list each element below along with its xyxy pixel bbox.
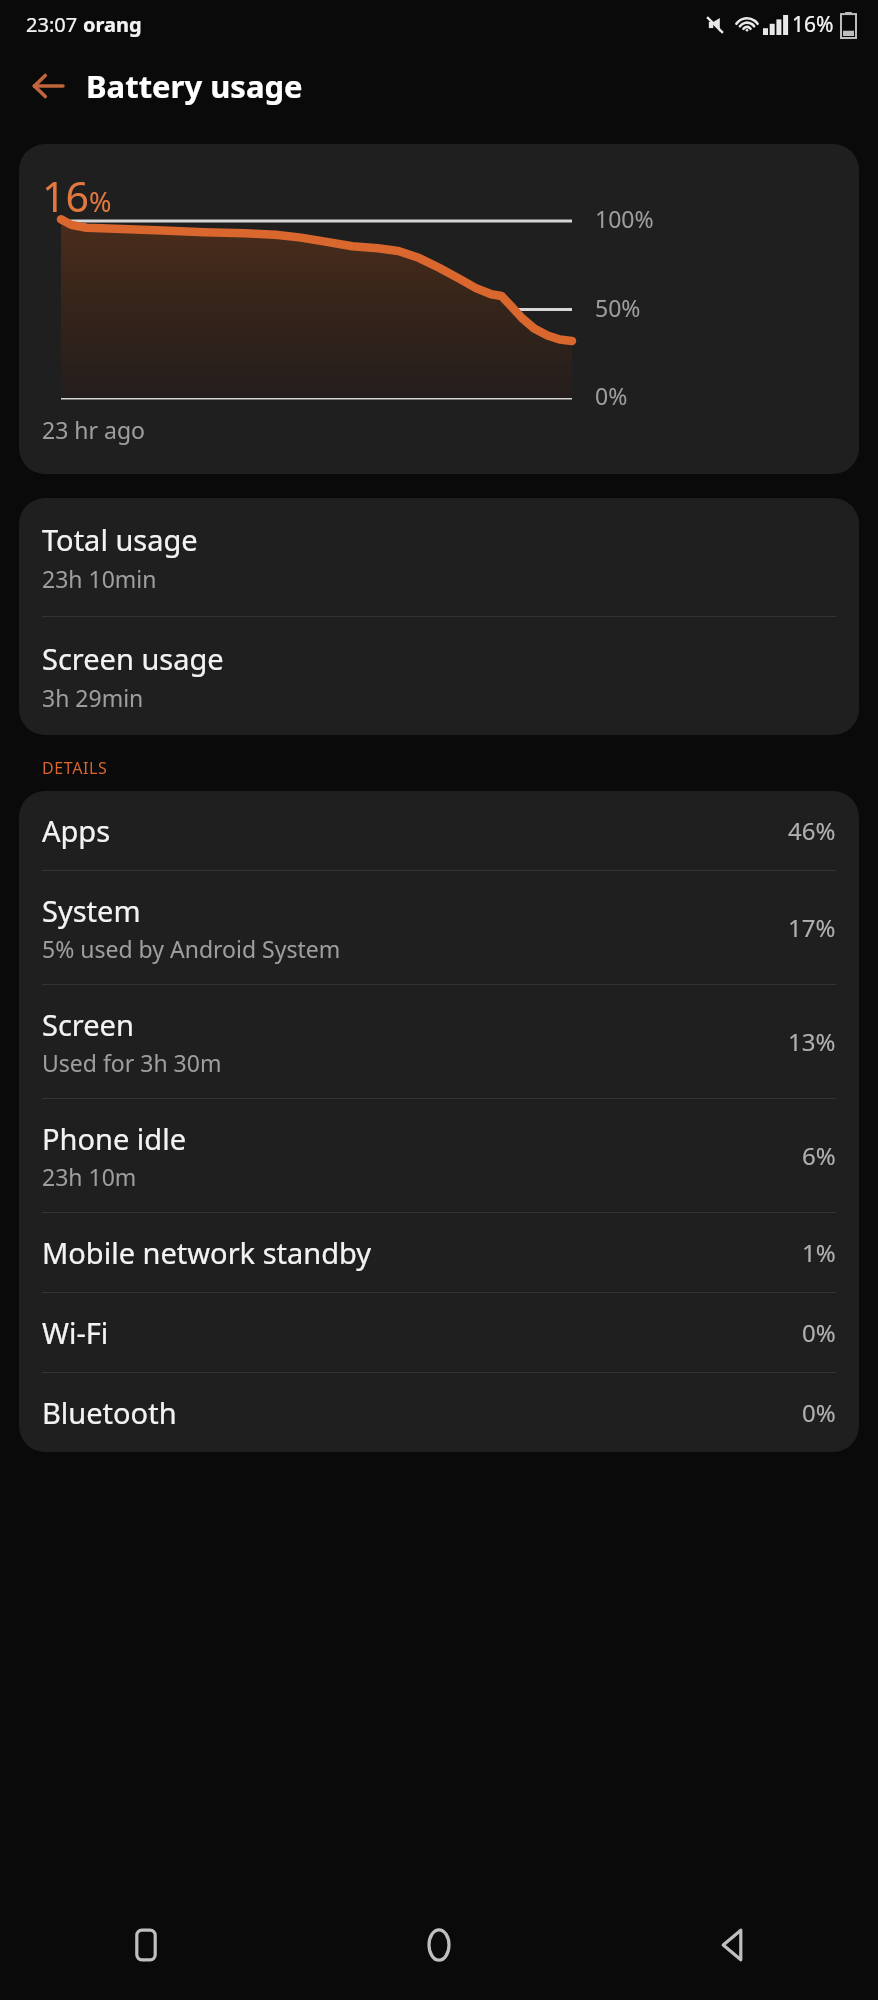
- staticText: Screen usage: [42, 639, 224, 678]
- staticText: 17%: [788, 911, 836, 944]
- button[interactable]: Back: [20, 58, 76, 114]
- button[interactable]: Back: [585, 1890, 878, 2000]
- staticText: Phone idle: [42, 1119, 186, 1158]
- staticText: 16: [42, 168, 89, 224]
- staticText: 13%: [788, 1025, 836, 1058]
- staticText: 16%: [792, 10, 834, 39]
- button[interactable]: Apps: [19, 791, 859, 870]
- staticText: 6%: [802, 1139, 836, 1172]
- button[interactable]: Mobile network standby: [19, 1213, 859, 1292]
- staticText: 0%: [802, 1316, 836, 1349]
- button[interactable]: Screen: [19, 985, 859, 1098]
- staticText: Screen: [42, 1005, 134, 1044]
- button[interactable]: Phone idle: [19, 1099, 859, 1212]
- staticText: 46%: [788, 814, 836, 847]
- staticText: DETAILS: [42, 757, 108, 779]
- staticText: 100%: [595, 203, 654, 234]
- staticText: System: [42, 891, 141, 930]
- staticText: Battery usage: [86, 65, 303, 107]
- staticText: Bluetooth: [42, 1393, 177, 1432]
- staticText: 5% used by Android System: [42, 933, 341, 964]
- staticText: %: [89, 183, 112, 220]
- staticText: 50%: [595, 292, 641, 323]
- staticText: 23 hr ago: [42, 414, 145, 445]
- staticText: 0%: [595, 380, 628, 411]
- button[interactable]: Wi-Fi: [19, 1293, 859, 1372]
- button[interactable]: Screen usage: [19, 617, 859, 735]
- staticText: orang: [83, 11, 142, 38]
- staticText: 23:07: [26, 11, 83, 38]
- staticText: Mobile network standby: [42, 1233, 372, 1272]
- button[interactable]: Recents: [0, 1890, 292, 2000]
- staticText: 1%: [802, 1236, 836, 1269]
- staticText: 23h 10min: [42, 563, 157, 594]
- button[interactable]: System: [19, 871, 859, 984]
- staticText: Apps: [42, 811, 111, 850]
- staticText: 23h 10m: [42, 1161, 137, 1192]
- button[interactable]: Total usage: [19, 498, 859, 616]
- staticText: 0%: [802, 1396, 836, 1429]
- staticText: Total usage: [42, 520, 198, 559]
- button[interactable]: Bluetooth: [19, 1373, 859, 1452]
- staticText: Used for 3h 30m: [42, 1047, 222, 1078]
- staticText: Wi-Fi: [42, 1313, 109, 1352]
- button[interactable]: Home: [292, 1890, 585, 2000]
- staticText: 3h 29min: [42, 682, 144, 713]
